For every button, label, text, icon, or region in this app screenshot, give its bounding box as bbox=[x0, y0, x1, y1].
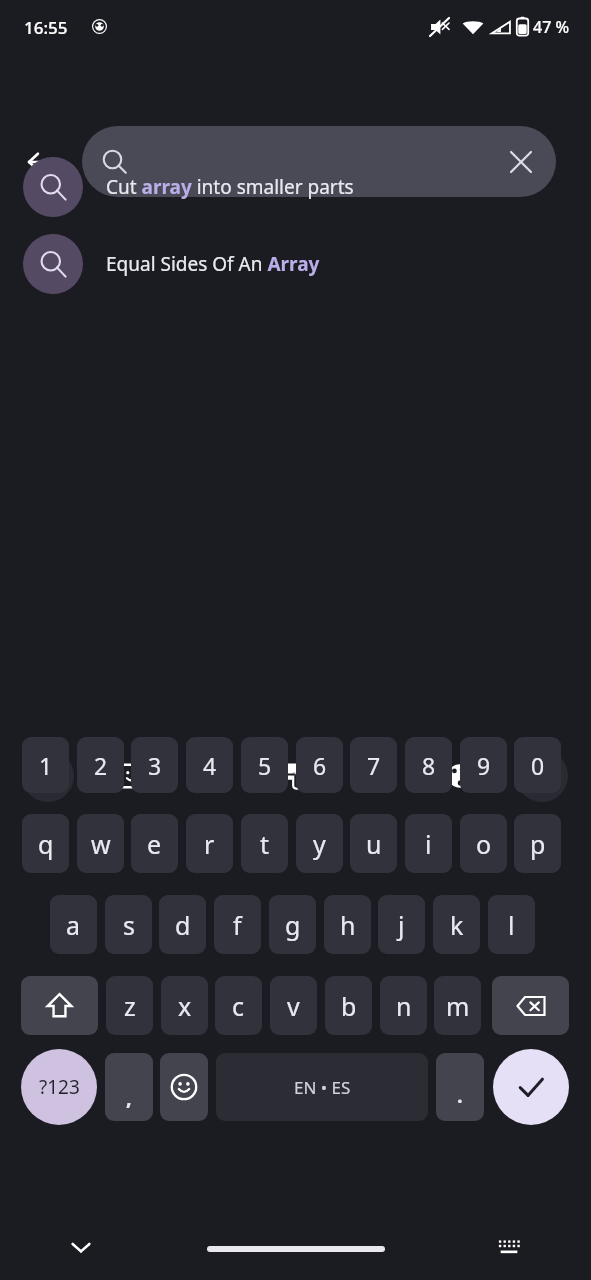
button[interactable]: z bbox=[106, 976, 153, 1035]
button[interactable]: b bbox=[325, 976, 372, 1035]
staticText: 47 % bbox=[533, 16, 570, 38]
button[interactable]: Voice input bbox=[516, 750, 568, 802]
button[interactable]: t bbox=[241, 814, 288, 873]
button[interactable]: Equal Sides Of An Array bbox=[0, 225, 591, 302]
button[interactable]: GIF bbox=[188, 750, 240, 802]
staticText: 2 bbox=[94, 750, 108, 781]
staticText: 1 bbox=[39, 750, 53, 781]
staticText: u bbox=[366, 827, 382, 861]
button[interactable]: e bbox=[131, 814, 178, 873]
staticText: Cut array into smaller parts bbox=[106, 174, 354, 200]
button[interactable]: m bbox=[434, 976, 481, 1035]
button[interactable]: u bbox=[350, 814, 397, 873]
staticText: g bbox=[285, 908, 301, 942]
staticText: n bbox=[396, 989, 412, 1023]
button[interactable]: 4 bbox=[186, 737, 233, 793]
button[interactable]: 6 bbox=[296, 737, 343, 793]
button[interactable]: l bbox=[488, 895, 535, 954]
button[interactable]: Emoji bbox=[160, 1053, 208, 1121]
staticText: a bbox=[66, 908, 81, 942]
button[interactable]: Themes bbox=[434, 750, 486, 802]
button[interactable]: g bbox=[269, 895, 316, 954]
staticText: l bbox=[508, 908, 515, 942]
staticText: b bbox=[341, 989, 357, 1023]
staticText: 5 bbox=[258, 750, 272, 781]
button[interactable]: d bbox=[159, 895, 206, 954]
staticText: 6 bbox=[313, 750, 327, 781]
button[interactable]: j bbox=[378, 895, 425, 954]
staticText: 4 bbox=[203, 750, 217, 781]
button[interactable]: 3 bbox=[131, 737, 178, 793]
button[interactable]: Enter bbox=[493, 1049, 569, 1125]
staticText: , bbox=[126, 1084, 132, 1111]
staticText: Equal Sides Of An Array bbox=[106, 251, 320, 277]
staticText: z bbox=[124, 989, 136, 1023]
staticText: 8 bbox=[422, 750, 436, 781]
button[interactable]: w bbox=[77, 814, 124, 873]
staticText: 0 bbox=[531, 750, 545, 781]
staticText: m bbox=[446, 989, 470, 1023]
button[interactable]: Switch keyboard bbox=[484, 1222, 534, 1272]
staticText: 7 bbox=[367, 750, 381, 781]
button[interactable]: n bbox=[380, 976, 427, 1035]
staticText: p bbox=[530, 827, 546, 861]
button[interactable]: i bbox=[405, 814, 452, 873]
button[interactable]: o bbox=[460, 814, 507, 873]
staticText: 3 bbox=[148, 750, 162, 781]
button[interactable]: r bbox=[186, 814, 233, 873]
staticText: i bbox=[425, 827, 432, 861]
staticText: w bbox=[91, 827, 111, 861]
staticText: x bbox=[178, 989, 192, 1023]
button[interactable]: s bbox=[105, 895, 152, 954]
button[interactable]: Apps bbox=[22, 750, 74, 802]
staticText: s bbox=[123, 908, 135, 942]
button[interactable]: f bbox=[214, 895, 261, 954]
staticText: t bbox=[260, 827, 270, 861]
button[interactable]: Back bbox=[13, 135, 67, 189]
staticText: d bbox=[175, 908, 191, 942]
button[interactable]: y bbox=[296, 814, 343, 873]
button[interactable]: EN • ES bbox=[216, 1053, 428, 1121]
staticText: y bbox=[313, 827, 326, 861]
button[interactable]: Clear bbox=[82, 126, 556, 197]
staticText: k bbox=[450, 908, 464, 942]
button[interactable]: a bbox=[50, 895, 97, 954]
button[interactable]: 1 bbox=[22, 737, 69, 793]
button[interactable]: 2 bbox=[77, 737, 124, 793]
button[interactable]: k bbox=[433, 895, 480, 954]
button[interactable]: v bbox=[270, 976, 317, 1035]
staticText: GIF bbox=[198, 763, 231, 789]
button[interactable]: q bbox=[22, 814, 69, 873]
staticText: e bbox=[147, 827, 162, 861]
button[interactable]: h bbox=[324, 895, 371, 954]
button[interactable]: Hide keyboard bbox=[56, 1222, 106, 1272]
staticText: . bbox=[457, 1082, 463, 1109]
button[interactable]: 8 bbox=[405, 737, 452, 793]
button[interactable]: Stickers bbox=[106, 750, 158, 802]
staticText: q bbox=[38, 827, 54, 861]
button[interactable]: , bbox=[105, 1053, 153, 1121]
button[interactable]: 9 bbox=[460, 737, 507, 793]
button[interactable]: GIF bbox=[188, 750, 240, 802]
button[interactable]: c bbox=[215, 976, 262, 1035]
button[interactable]: 7 bbox=[350, 737, 397, 793]
staticText: h bbox=[340, 908, 356, 942]
staticText: r bbox=[204, 827, 215, 861]
button[interactable]: ?123 bbox=[21, 1049, 97, 1125]
button[interactable]: p bbox=[514, 814, 561, 873]
button[interactable]: 5 bbox=[241, 737, 288, 793]
staticText: o bbox=[476, 827, 492, 861]
button[interactable]: Clear bbox=[496, 137, 546, 187]
button[interactable]: Cut array into smaller parts bbox=[0, 148, 591, 225]
button[interactable]: 0 bbox=[514, 737, 561, 793]
staticText: v bbox=[287, 989, 300, 1023]
button[interactable]: . bbox=[436, 1053, 484, 1121]
button[interactable]: Translate bbox=[270, 750, 322, 802]
staticText: 16:55 bbox=[24, 16, 68, 39]
button[interactable]: Backspace bbox=[492, 976, 569, 1035]
button[interactable]: Settings bbox=[352, 750, 404, 802]
staticText: f bbox=[233, 908, 242, 942]
staticText: EN • ES bbox=[294, 1076, 351, 1099]
button[interactable]: x bbox=[161, 976, 208, 1035]
button[interactable]: Shift bbox=[21, 976, 98, 1035]
